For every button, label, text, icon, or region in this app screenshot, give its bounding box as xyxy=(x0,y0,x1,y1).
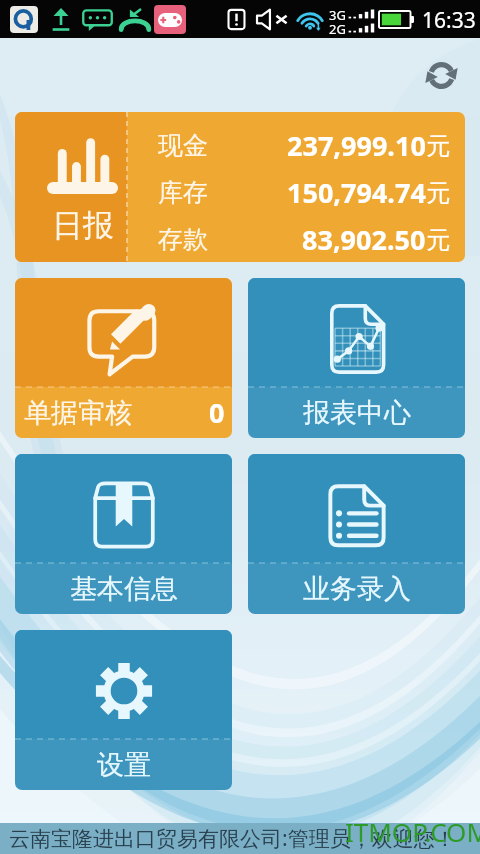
button[interactable]: 报表中心 xyxy=(248,278,465,438)
staticText: 元 xyxy=(426,225,450,255)
staticText: 2G xyxy=(329,20,346,38)
button[interactable]: 业务录入 xyxy=(248,454,465,614)
staticText: 0 xyxy=(209,394,225,431)
staticText: 业务录入 xyxy=(303,572,411,606)
staticText: 日报 xyxy=(52,206,114,245)
staticText: 单据审核 xyxy=(24,396,132,430)
staticText: 150,794.74 xyxy=(287,174,426,211)
staticText: 云南宝隆进出口贸易有限公司:管理员，欢迎您！ xyxy=(9,824,456,853)
staticText: 237,999.10 xyxy=(287,127,426,164)
staticText: 83,902.50 xyxy=(302,221,426,258)
staticText: 存款 xyxy=(158,224,208,255)
button[interactable]: 设置 xyxy=(15,630,232,790)
staticText: 现金 xyxy=(158,130,208,161)
staticText: 3G xyxy=(329,6,346,24)
button[interactable]: 日报 xyxy=(15,112,465,262)
staticText: 设置 xyxy=(97,748,151,782)
button[interactable]: 单据审核 xyxy=(15,278,232,438)
staticText: 元 xyxy=(426,178,450,208)
button[interactable]: Refresh xyxy=(415,49,467,101)
button[interactable]: 基本信息 xyxy=(15,454,232,614)
staticText: 基本信息 xyxy=(70,572,178,606)
staticText: 报表中心 xyxy=(303,396,411,430)
staticText: ITMOP.COM xyxy=(345,814,480,849)
staticText: 元 xyxy=(426,131,450,161)
staticText: 16:33 xyxy=(422,6,476,35)
staticText: 库存 xyxy=(158,177,208,208)
